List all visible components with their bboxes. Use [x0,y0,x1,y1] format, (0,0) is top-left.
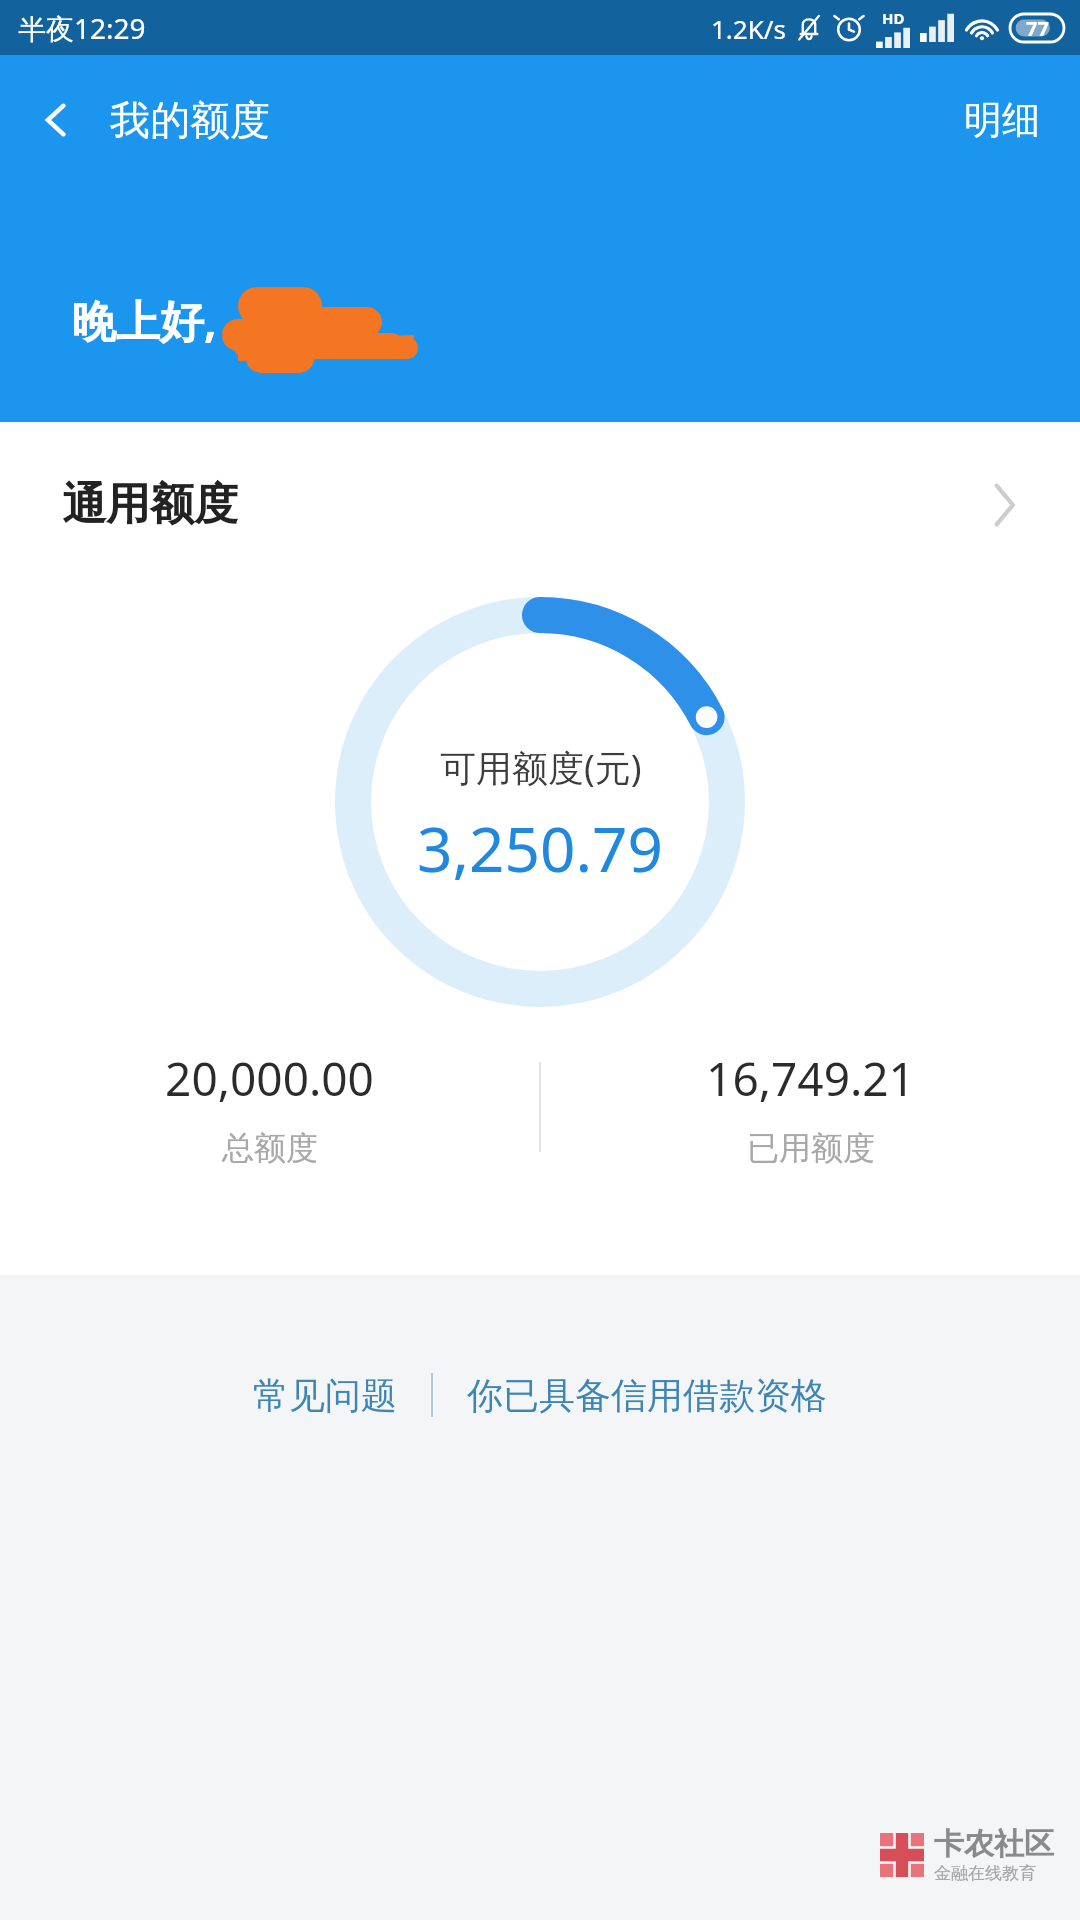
staticText: 已用额度 [747,1128,875,1168]
staticText: 你已具备信用借款资格 [467,1373,827,1418]
staticText: 通用额度 [62,477,238,532]
staticText: 20,000.00 [165,1047,374,1110]
staticText: 晚上好, [72,290,217,350]
staticText: 总额度 [222,1128,318,1168]
staticText: 金融在线教育 [934,1863,1036,1884]
button[interactable]: 常见问题 [241,1357,409,1434]
staticText: HD [882,8,905,28]
button[interactable]: 通用额度 [0,422,1080,587]
staticText: 16,749.21 [706,1047,915,1110]
staticText: 常见问题 [253,1373,397,1418]
staticText: 可用额度(元) [440,743,642,792]
button[interactable]: 明细 [924,78,1080,162]
staticText: 卡农社区 [934,1825,1054,1863]
staticText: 3,250.79 [417,806,664,890]
button[interactable]: Back [24,88,88,152]
staticText: 77 [1026,15,1049,42]
staticText: 我的额度 [110,95,270,145]
staticText: 明细 [964,96,1040,144]
button[interactable]: 你已具备信用借款资格 [455,1357,839,1434]
staticText: 半夜12:29 [18,9,146,47]
staticText: 1.2K/s [711,11,786,46]
